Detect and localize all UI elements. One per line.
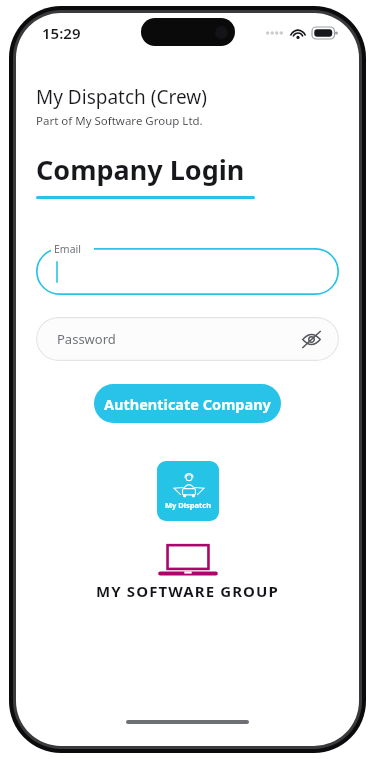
button[interactable]: My Dispatch — [157, 461, 219, 521]
button[interactable]: Authenticate Company — [94, 384, 281, 423]
staticText: Email — [54, 242, 81, 256]
staticText: Part of My Software Group Ltd. — [36, 113, 203, 129]
button[interactable]: Email — [36, 248, 339, 295]
staticText: Company Login — [36, 151, 245, 188]
staticText: 15:29 — [42, 23, 81, 43]
staticText: My Dispatch — [165, 500, 212, 510]
staticText: Authenticate Company — [104, 394, 271, 414]
staticText: My Dispatch (Crew) — [36, 84, 207, 110]
button[interactable]: Password — [36, 317, 339, 361]
staticText: Password — [57, 330, 116, 348]
staticText: MY SOFTWARE GROUP — [96, 581, 279, 601]
button[interactable]: Show password — [299, 327, 323, 351]
